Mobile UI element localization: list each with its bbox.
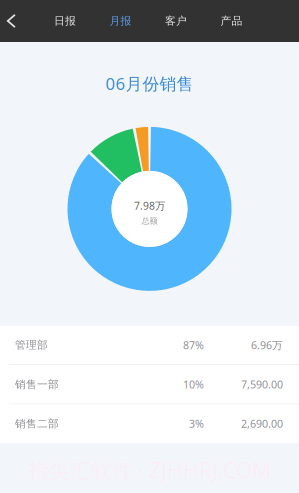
button[interactable]: 月报 (103, 0, 137, 42)
staticText: 87% (183, 338, 204, 352)
staticText: 销售一部 (15, 378, 59, 391)
staticText: 总额 (141, 216, 157, 226)
staticText: 销售二部 (15, 417, 59, 430)
staticText: 7,590.00 (241, 377, 283, 392)
staticText: 管理部 (15, 338, 48, 352)
button[interactable]: Back (0, 0, 23, 42)
staticText: 客户 (165, 14, 187, 28)
staticText: 6.96万 (251, 338, 283, 352)
button[interactable]: 日报 (48, 0, 82, 42)
staticText: 日报 (54, 14, 76, 28)
staticText: 10% (183, 377, 204, 392)
staticText: 06月份销售 (105, 72, 193, 95)
staticText: 月报 (109, 14, 131, 28)
button[interactable]: 销售二部 (0, 404, 299, 443)
staticText: 产品 (220, 14, 242, 28)
staticText: 7.98万 (134, 199, 165, 213)
button[interactable]: 产品 (214, 0, 248, 42)
button[interactable]: 销售一部 (0, 365, 299, 403)
staticText: 3% (189, 416, 204, 431)
staticText: 2,690.00 (241, 416, 283, 431)
button[interactable]: 管理部 (0, 326, 299, 364)
button[interactable]: 客户 (159, 0, 193, 42)
